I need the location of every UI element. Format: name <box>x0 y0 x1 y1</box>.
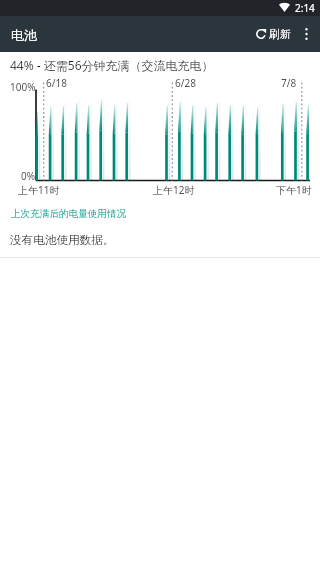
staticText: 没有电池使用数据。 <box>10 233 115 248</box>
staticText: 0% <box>21 169 36 183</box>
button[interactable]: 上次充满后的电量使用情况 <box>0 205 320 217</box>
staticText: 上午11时 <box>18 183 60 197</box>
staticText: 7/8 <box>281 76 297 90</box>
staticText: 电池 <box>11 27 37 43</box>
staticText: 下午1时 <box>276 183 312 197</box>
button[interactable]: More options <box>294 16 318 52</box>
staticText: 上午12时 <box>153 183 195 197</box>
staticText: 44% - 还需56分钟充满（交流电充电） <box>10 57 214 73</box>
staticText: 6/18 <box>46 76 67 90</box>
button[interactable]: 刷新 <box>252 16 284 52</box>
staticText: 刷新 <box>269 27 291 41</box>
staticText: 上次充满后的电量使用情况 <box>11 208 127 220</box>
staticText: 100% <box>10 80 36 94</box>
staticText: 2:14 <box>295 1 315 15</box>
staticText: 6/28 <box>175 76 196 90</box>
